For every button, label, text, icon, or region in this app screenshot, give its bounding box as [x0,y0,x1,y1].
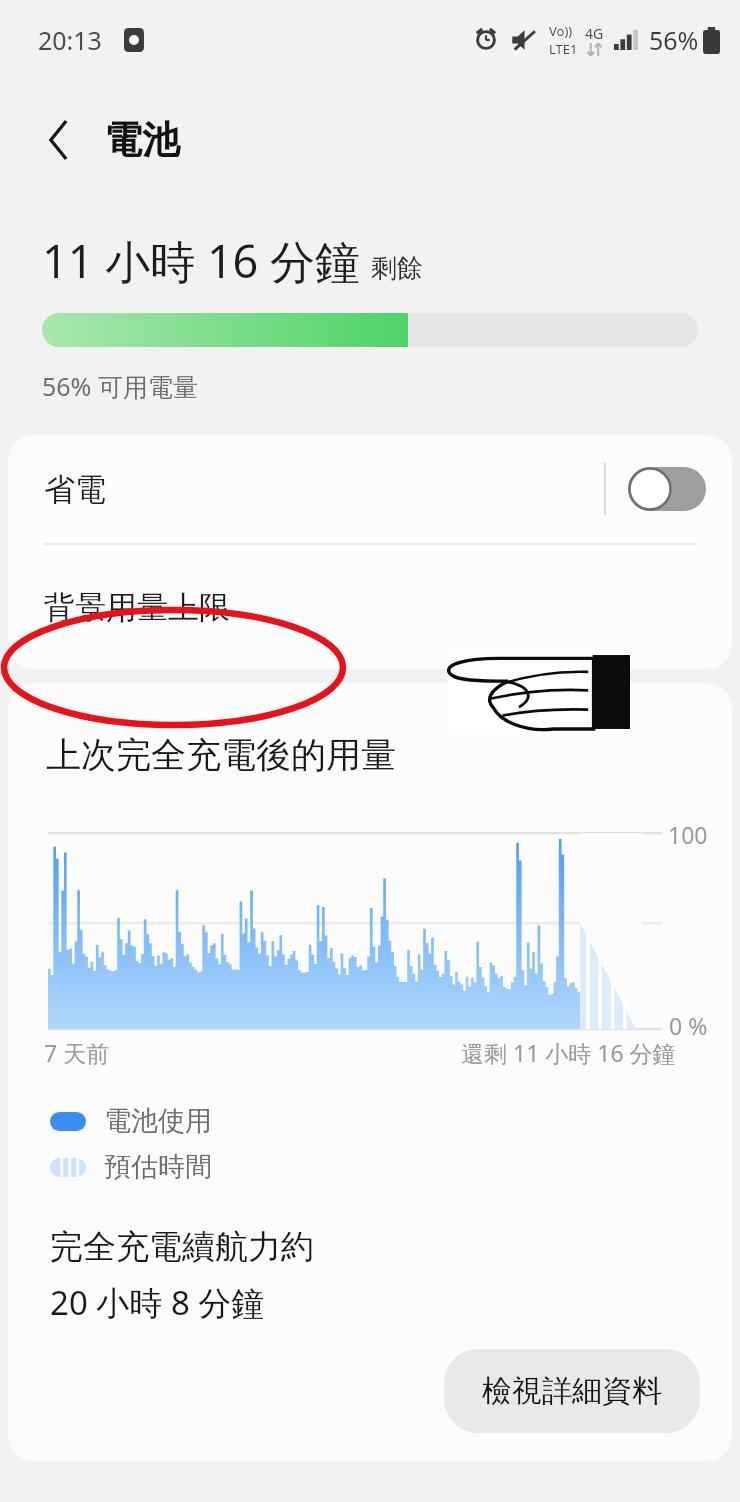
staticText: 4G [585,24,604,43]
staticText: LTE1 [549,40,578,58]
staticText: 100 [668,819,708,850]
staticText: 預估時間 [104,1150,212,1184]
button[interactable]: Back [30,111,88,169]
staticText: 20:13 [38,23,102,57]
staticText: 完全充電續航力約 [50,1226,314,1268]
staticText: 剩餘 [371,252,423,285]
staticText: 56% [649,23,699,57]
staticText: 20 小時 8 分鐘 [50,1280,265,1325]
button[interactable]: 檢視詳細資料 [444,1349,700,1433]
staticText: Vo)) [549,22,573,40]
button[interactable]: Power saving toggle, off [628,467,706,511]
button[interactable]: 省電 [8,435,732,543]
staticText: 還剩 11 小時 16 分鐘 [461,1037,676,1068]
staticText: 電池 [104,116,180,164]
staticText: 背景用量上限 [44,588,230,627]
staticText: 11 小時 16 分鐘 [42,230,361,291]
staticText: 電池使用 [104,1104,212,1138]
staticText: 56% 可用電量 [42,369,198,403]
staticText: 0 % [669,1010,708,1041]
staticText: 7 天前 [44,1037,110,1068]
staticText: 上次完全充電後的用量 [46,733,396,777]
button[interactable]: 背景用量上限 [8,545,732,669]
staticText: 檢視詳細資料 [482,1372,662,1410]
staticText: 省電 [44,470,604,509]
